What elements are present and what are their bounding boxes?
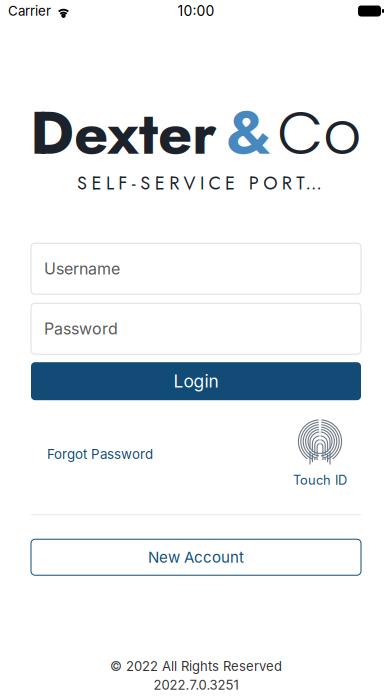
staticText: &: [226, 90, 271, 176]
staticText: 2022.7.0.3251: [153, 677, 238, 693]
button[interactable]: Touch ID: [279, 422, 361, 486]
staticText: Password: [44, 319, 118, 338]
staticText: Co: [277, 91, 362, 175]
staticText: Dexter: [30, 90, 217, 176]
staticText: 10:00: [177, 2, 214, 19]
button[interactable]: New Account: [31, 539, 361, 575]
staticText: SELF-SERVICE PORTAL: [77, 170, 322, 196]
staticText: © 2022 All Rights Reserved: [110, 658, 282, 674]
button[interactable]: Forgot Password: [31, 422, 153, 486]
staticText: Forgot Password: [47, 446, 153, 462]
staticText: Login: [173, 371, 218, 392]
staticText: New Account: [148, 548, 244, 566]
staticText: Carrier: [8, 3, 51, 19]
staticText: Username: [44, 259, 120, 278]
staticText: Touch ID: [293, 472, 347, 488]
button[interactable]: Login: [31, 362, 361, 400]
